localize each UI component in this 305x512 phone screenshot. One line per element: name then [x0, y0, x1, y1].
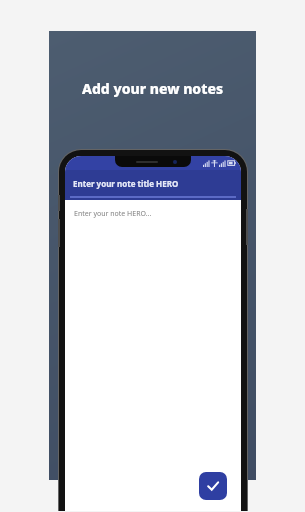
staticText: Enter your note HERO...: [74, 209, 152, 219]
staticText: Add your new notes: [82, 79, 224, 98]
button[interactable]: Enter your note title HERO: [65, 170, 241, 196]
button[interactable]: Save note: [199, 472, 227, 500]
staticText: Enter your note title HERO: [73, 178, 179, 189]
button[interactable]: Enter your note HERO...: [65, 200, 241, 511]
